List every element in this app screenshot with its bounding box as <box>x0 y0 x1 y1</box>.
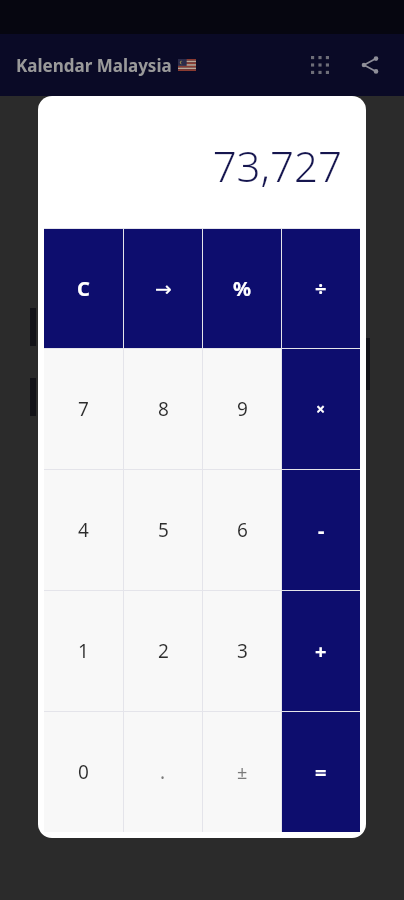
button[interactable]: ± <box>203 712 281 832</box>
staticText: 9 <box>237 396 248 422</box>
button[interactable]: 3 <box>203 591 281 711</box>
button[interactable]: = <box>282 712 360 832</box>
staticText: . <box>160 759 166 785</box>
button[interactable]: ÷ <box>282 229 360 348</box>
button[interactable]: Share <box>348 43 392 87</box>
button[interactable]: - <box>282 470 360 590</box>
staticText: 1 <box>78 638 89 664</box>
staticText: 6 <box>237 517 248 543</box>
staticText: - <box>318 517 325 544</box>
staticText: Kalendar Malaysia <box>16 54 172 77</box>
staticText: 8 <box>158 396 169 422</box>
staticText: C <box>77 275 90 302</box>
staticText: % <box>233 275 252 302</box>
button[interactable]: % <box>203 229 281 348</box>
button[interactable]: 5 <box>124 470 202 590</box>
staticText: 2 <box>158 638 169 664</box>
button[interactable]: → <box>124 229 202 348</box>
button[interactable]: Apps <box>298 43 342 87</box>
button[interactable]: 4 <box>44 470 123 590</box>
staticText: = <box>315 759 327 786</box>
staticText: 7 <box>78 396 89 422</box>
button[interactable]: 8 <box>124 349 202 469</box>
staticText: 5 <box>158 517 169 543</box>
button[interactable]: 6 <box>203 470 281 590</box>
button[interactable]: 1 <box>44 591 123 711</box>
button[interactable]: C <box>44 229 123 348</box>
staticText: 73,727 <box>212 137 342 194</box>
button[interactable]: 9 <box>203 349 281 469</box>
button[interactable]: × <box>282 349 360 469</box>
staticText: 3 <box>237 638 248 664</box>
staticText: → <box>155 277 172 300</box>
staticText: × <box>316 398 326 420</box>
button[interactable]: 7 <box>44 349 123 469</box>
button[interactable]: + <box>282 591 360 711</box>
staticText: + <box>315 638 327 665</box>
staticText: ÷ <box>315 275 327 302</box>
button[interactable]: 0 <box>44 712 123 832</box>
staticText: 4 <box>78 517 89 543</box>
staticText: 0 <box>78 759 89 785</box>
button[interactable]: 2 <box>124 591 202 711</box>
staticText: ± <box>237 760 248 785</box>
